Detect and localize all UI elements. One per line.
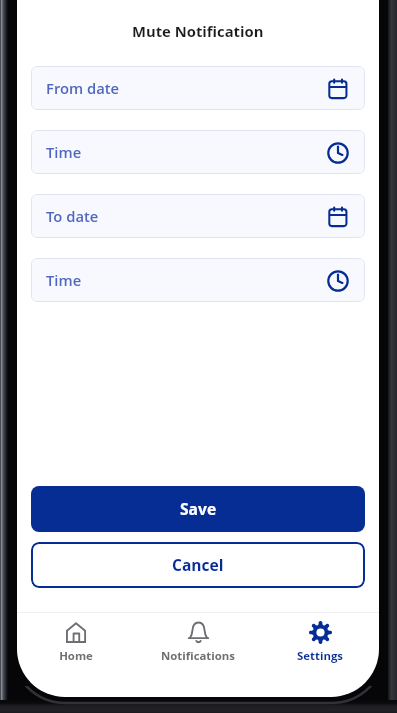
other: Pick time [327,142,349,164]
button[interactable]: Settings [261,613,379,673]
staticText: Notifications [161,648,235,664]
staticText: Save [180,498,217,519]
staticText: Mute Notification [132,21,264,41]
button[interactable]: From date [31,66,365,110]
button[interactable]: Notifications [135,613,261,673]
other: Pick time [327,270,349,292]
staticText: Time [46,270,82,290]
other: Pick date [327,78,349,100]
staticText: From date [46,78,120,98]
staticText: Time [46,142,82,162]
button[interactable]: To date [31,194,365,238]
staticText: Settings [297,648,343,664]
button[interactable]: Home [17,613,135,673]
button[interactable]: Time [31,130,365,174]
staticText: To date [46,206,99,226]
button[interactable]: Time [31,258,365,302]
button[interactable]: Cancel [31,542,365,588]
staticText: Cancel [172,554,224,575]
button[interactable]: Save [31,486,365,532]
other: Pick date [327,206,349,228]
staticText: Home [59,648,93,664]
